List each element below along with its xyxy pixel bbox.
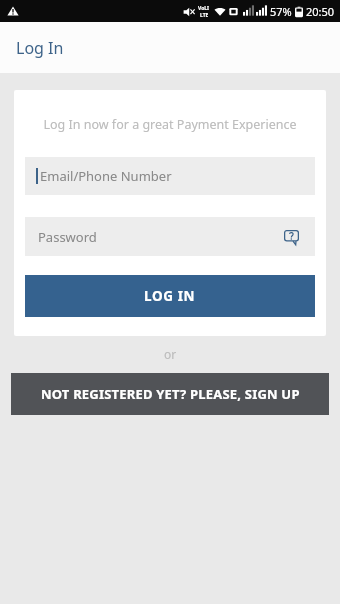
button[interactable]: NOT REGISTERED YET? PLEASE, SIGN UP [11,373,329,415]
button[interactable]: Password help [280,226,302,248]
staticText: Log In [16,37,64,59]
button[interactable]: Password [25,217,315,256]
button[interactable]: Email/Phone Number [25,157,315,195]
staticText: NOT REGISTERED YET? PLEASE, SIGN UP [41,385,300,403]
staticText: VoLI [198,5,210,12]
staticText: 20:50 [306,4,335,19]
staticText: 57% [270,4,292,19]
staticText: LTE [200,12,209,19]
staticText: LOG IN [144,287,196,305]
staticText: Email/Phone Number [40,167,172,185]
button[interactable]: LOG IN [25,275,315,317]
staticText: Log In now for a great Payment Experienc… [25,116,315,133]
staticText: Password [38,228,97,246]
